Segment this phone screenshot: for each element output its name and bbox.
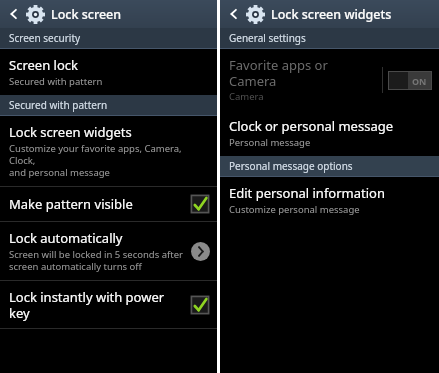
other: Back: [6, 6, 22, 22]
other: Back: [226, 6, 242, 22]
staticText: Camera: [229, 90, 264, 103]
staticText: Make pattern visible: [9, 195, 133, 213]
button[interactable]: Favorite apps or Camera switch, on: [388, 71, 432, 90]
button[interactable]: Lock instantly with power key: [0, 281, 217, 328]
staticText: Favorite apps or Camera: [229, 56, 376, 89]
button[interactable]: Favorite apps or Camera: [220, 49, 439, 110]
staticText: Screen security: [9, 31, 81, 45]
button[interactable]: Clock or personal message: [220, 110, 439, 156]
staticText: Lock automatically: [9, 229, 123, 247]
staticText: Lock screen: [51, 6, 122, 23]
button[interactable]: Back: [220, 0, 439, 28]
button[interactable]: Make pattern visible: [0, 187, 217, 221]
staticText: ON: [412, 75, 427, 87]
staticText: Screen lock: [9, 56, 78, 74]
staticText: General settings: [229, 31, 306, 45]
button[interactable]: Screen lock: [0, 49, 217, 95]
button[interactable]: Edit personal information: [220, 177, 439, 223]
staticText: Screen will be locked in 5 seconds after…: [9, 248, 183, 273]
staticText: Secured with pattern: [9, 75, 103, 88]
staticText: Secured with pattern: [9, 98, 108, 112]
staticText: Edit personal information: [229, 184, 385, 202]
button[interactable]: Back: [0, 0, 217, 28]
staticText: Lock screen widgets: [271, 6, 392, 23]
staticText: Customize personal message: [229, 203, 360, 216]
staticText: Customize your favorite apps, Camera, Cl…: [9, 142, 210, 179]
staticText: Personal message: [229, 136, 311, 149]
button[interactable]: More options: [191, 242, 210, 261]
button[interactable]: Lock automatically: [0, 222, 217, 280]
button[interactable]: Lock screen widgets: [0, 116, 217, 186]
other: Checked: [190, 295, 210, 315]
other: Checked: [190, 194, 210, 214]
staticText: Personal message options: [229, 159, 353, 173]
staticText: Clock or personal message: [229, 117, 394, 135]
staticText: Lock instantly with power key: [9, 288, 184, 321]
staticText: Lock screen widgets: [9, 123, 132, 141]
